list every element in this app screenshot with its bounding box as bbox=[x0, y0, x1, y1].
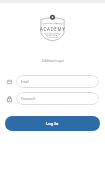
staticText: Silahkan Login bbox=[42, 59, 64, 63]
staticText: SOCIAL MEDIA bbox=[44, 21, 62, 24]
staticText: Log In bbox=[46, 121, 59, 126]
staticText: SINCE 2018 bbox=[47, 34, 58, 37]
button[interactable]: Log In bbox=[5, 116, 100, 131]
staticText: ACADEMY bbox=[40, 26, 66, 32]
staticText: Email bbox=[21, 80, 29, 84]
button[interactable]: Password bbox=[16, 92, 99, 105]
staticText: Password bbox=[21, 97, 35, 101]
button[interactable]: Email bbox=[16, 75, 99, 88]
other: Email bbox=[6, 75, 13, 88]
other: Password bbox=[6, 92, 13, 105]
